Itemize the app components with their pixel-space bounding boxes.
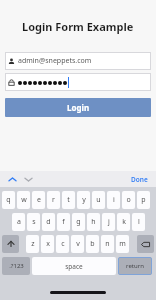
staticText: p: [141, 195, 146, 205]
staticText: admin@sneppets.com: [18, 56, 92, 66]
button[interactable]: Shift: [2, 235, 19, 253]
staticText: u: [96, 195, 101, 205]
button[interactable]: admin@sneppets.com: [5, 52, 151, 70]
staticText: r: [52, 195, 55, 205]
button[interactable]: m: [116, 235, 129, 253]
button[interactable]: Login: [5, 98, 151, 117]
button[interactable]: [5, 73, 151, 91]
staticText: return: [126, 262, 144, 270]
button[interactable]: t: [62, 191, 75, 209]
button[interactable]: space: [32, 257, 116, 275]
staticText: a: [17, 217, 21, 227]
staticText: v: [76, 239, 80, 249]
staticText: s: [32, 217, 36, 227]
button[interactable]: f: [57, 213, 70, 231]
staticText: x: [46, 239, 50, 249]
button[interactable]: Backspace: [137, 235, 154, 253]
button[interactable]: k: [117, 213, 130, 231]
staticText: t: [67, 195, 70, 205]
button[interactable]: y: [77, 191, 90, 209]
button[interactable]: u: [92, 191, 105, 209]
staticText: k: [122, 217, 126, 227]
button[interactable]: c: [56, 235, 69, 253]
staticText: h: [91, 217, 96, 227]
button[interactable]: v: [71, 235, 84, 253]
button[interactable]: o: [122, 191, 135, 209]
staticText: .?123: [9, 262, 24, 270]
staticText: c: [61, 239, 65, 249]
button[interactable]: w: [17, 191, 30, 209]
staticText: w: [21, 195, 27, 205]
staticText: d: [46, 217, 51, 227]
staticText: m: [119, 239, 126, 249]
staticText: y: [82, 195, 86, 205]
staticText: Done: [131, 175, 148, 184]
button[interactable]: g: [72, 213, 85, 231]
button[interactable]: i: [107, 191, 120, 209]
button[interactable]: return: [118, 257, 152, 275]
button[interactable]: x: [41, 235, 54, 253]
staticText: l: [138, 217, 140, 227]
button[interactable]: e: [32, 191, 45, 209]
staticText: Login Form Example: [22, 19, 134, 34]
button[interactable]: Previous field: [6, 173, 18, 185]
button[interactable]: q: [2, 191, 15, 209]
button[interactable]: Next field: [22, 173, 34, 185]
button[interactable]: n: [101, 235, 114, 253]
button[interactable]: b: [86, 235, 99, 253]
staticText: e: [37, 195, 41, 205]
button[interactable]: r: [47, 191, 60, 209]
staticText: Login: [67, 102, 90, 113]
staticText: n: [105, 239, 110, 249]
staticText: g: [76, 217, 81, 227]
button[interactable]: h: [87, 213, 100, 231]
button[interactable]: p: [137, 191, 150, 209]
staticText: j: [108, 217, 110, 227]
button[interactable]: d: [42, 213, 55, 231]
staticText: space: [65, 262, 83, 271]
staticText: o: [126, 195, 131, 205]
staticText: i: [113, 195, 115, 205]
staticText: b: [90, 239, 95, 249]
button[interactable]: Done: [129, 173, 150, 186]
button[interactable]: .?123: [2, 257, 30, 275]
button[interactable]: l: [132, 213, 145, 231]
staticText: f: [62, 217, 65, 227]
staticText: q: [6, 195, 11, 205]
staticText: z: [31, 239, 35, 249]
button[interactable]: z: [26, 235, 39, 253]
button[interactable]: j: [102, 213, 115, 231]
button[interactable]: s: [27, 213, 40, 231]
button[interactable]: a: [12, 213, 25, 231]
